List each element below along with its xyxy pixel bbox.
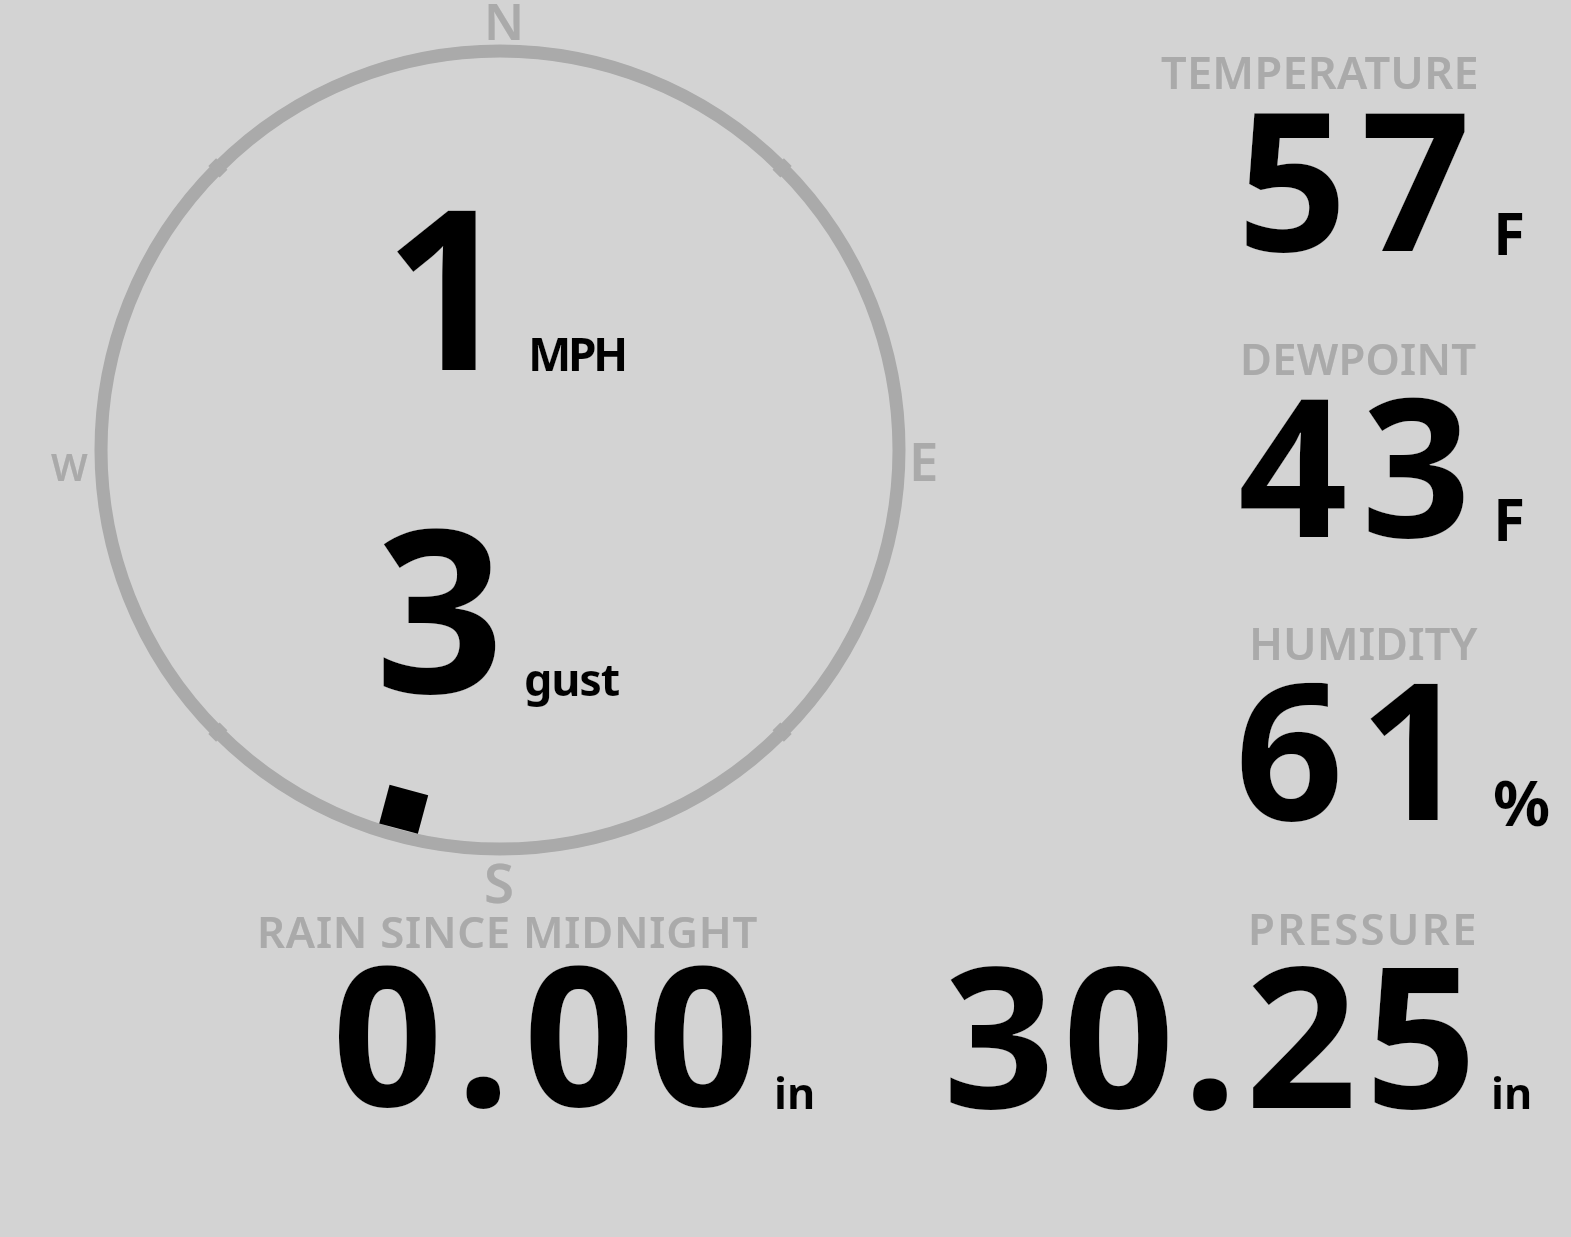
staticText: 57 bbox=[1237, 45, 1484, 308]
staticText: RAIN SINCE MIDNIGHT bbox=[257, 901, 758, 960]
staticText: in bbox=[1491, 1063, 1533, 1122]
staticText: S bbox=[484, 845, 514, 919]
staticText: 0.00 bbox=[332, 899, 772, 1163]
staticText: E bbox=[909, 425, 939, 497]
staticText: HUMIDITY bbox=[1249, 612, 1478, 673]
staticText: F bbox=[1493, 192, 1526, 272]
staticText: DEWPOINT bbox=[1240, 328, 1477, 387]
staticText: TEMPERATURE bbox=[1161, 41, 1479, 102]
staticText: gust bbox=[524, 648, 620, 709]
staticText: % bbox=[1493, 758, 1551, 844]
staticText: F bbox=[1493, 478, 1526, 558]
staticText: N bbox=[484, 0, 525, 55]
button[interactable]: Wind speed and direction compass bbox=[100, 50, 900, 850]
staticText: 43 bbox=[1238, 332, 1485, 594]
staticText: MPH bbox=[528, 322, 625, 385]
button[interactable]: Dewpoint 43 degrees F bbox=[1100, 310, 1571, 570]
staticText: in bbox=[774, 1063, 816, 1122]
staticText: PRESSURE bbox=[1248, 898, 1479, 957]
staticText: W bbox=[51, 440, 88, 492]
button[interactable]: Rain since midnight 0.00 inches bbox=[220, 900, 840, 1130]
staticText: 61 bbox=[1235, 617, 1484, 876]
staticText: 3 bbox=[375, 451, 505, 759]
button[interactable]: Humidity 61 percent bbox=[1100, 595, 1571, 855]
button[interactable]: Pressure 30.25 inches bbox=[900, 890, 1571, 1130]
staticText: 1 bbox=[384, 133, 511, 435]
staticText: 30.25 bbox=[943, 899, 1485, 1166]
button[interactable]: Temperature 57 degrees F bbox=[1100, 30, 1571, 300]
